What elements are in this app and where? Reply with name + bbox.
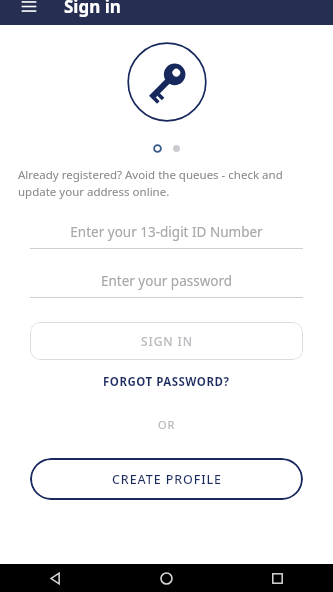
staticText: FORGOT PASSWORD? bbox=[103, 374, 230, 390]
button[interactable]: FORGOT PASSWORD? bbox=[93, 371, 240, 393]
button[interactable]: SIGN IN bbox=[30, 322, 303, 360]
button[interactable]: Back bbox=[0, 564, 111, 592]
staticText: CREATE PROFILE bbox=[112, 471, 222, 488]
button[interactable]: Open navigation menu bbox=[12, 0, 46, 19]
staticText: Sign in bbox=[64, 0, 121, 18]
button[interactable]: Home bbox=[111, 564, 222, 592]
button[interactable]: Recent apps bbox=[222, 564, 333, 592]
staticText: OR bbox=[158, 417, 176, 432]
staticText: Enter your password bbox=[30, 272, 303, 290]
button[interactable]: Enter your 13-digit ID Number bbox=[30, 223, 303, 249]
button[interactable]: Enter your password bbox=[30, 272, 303, 298]
button[interactable]: CREATE PROFILE bbox=[30, 458, 303, 500]
staticText: Already registered? Avoid the queues - c… bbox=[18, 167, 317, 199]
staticText: SIGN IN bbox=[141, 333, 193, 349]
staticText: Enter your 13-digit ID Number bbox=[30, 223, 303, 241]
